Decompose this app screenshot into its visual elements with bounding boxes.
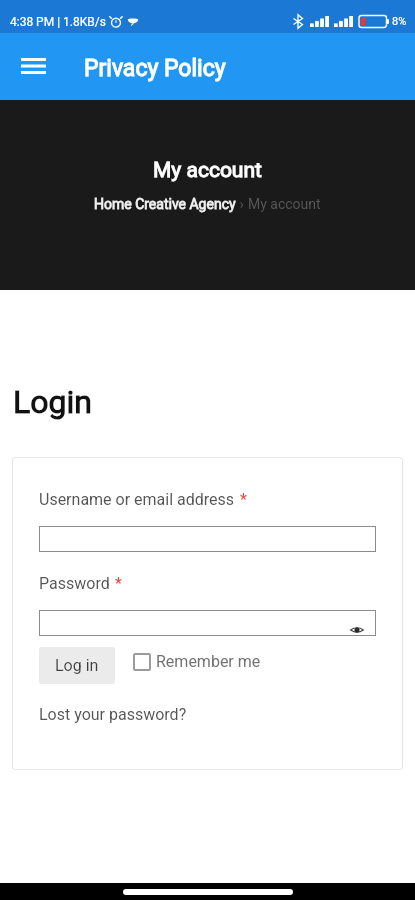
button[interactable]: Open navigation drawer [9,42,57,90]
staticText: My account [153,158,262,183]
staticText: Username or email address [39,490,235,509]
button[interactable]: Lost your password? [39,705,187,724]
button[interactable]: Remember me [133,652,261,671]
staticText: › [236,196,248,212]
staticText: Privacy Policy [84,55,226,82]
staticText: My account [248,196,321,212]
staticText: 4:38 PM | 1.8KB/s [10,15,106,29]
staticText: * [240,490,247,509]
staticText: Password [39,574,110,593]
button[interactable] [39,526,376,552]
button[interactable] [39,610,376,636]
staticText: Log in [55,656,99,675]
staticText: * [115,574,122,593]
staticText: Login [13,383,92,421]
button[interactable]: Show password [348,621,366,639]
button[interactable]: Log in [39,647,115,684]
button[interactable]: Home Creative Agency [94,196,236,212]
staticText: 8% [392,15,407,28]
staticText: Remember me [156,652,261,671]
